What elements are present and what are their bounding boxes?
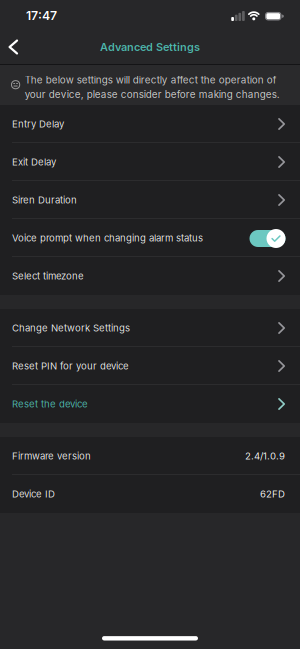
staticText: Exit Delay bbox=[12, 156, 56, 168]
button[interactable]: Reset PIN for your device bbox=[0, 347, 300, 385]
staticText: Reset PIN for your device bbox=[12, 360, 129, 372]
button[interactable]: Select timezone bbox=[0, 257, 300, 295]
button[interactable]: Entry Delay bbox=[0, 105, 300, 143]
staticText: your device, please consider before maki… bbox=[25, 88, 280, 100]
staticText: 17:47 bbox=[26, 8, 57, 23]
button[interactable]: Voice prompt when changing alarm status bbox=[0, 219, 300, 257]
button[interactable]: Back bbox=[0, 39, 18, 55]
staticText: 62FD bbox=[260, 488, 285, 500]
button[interactable]: Siren Duration bbox=[0, 181, 300, 219]
staticText: Voice prompt when changing alarm status bbox=[12, 232, 203, 244]
button[interactable]: Exit Delay bbox=[0, 143, 300, 181]
staticText: Siren Duration bbox=[12, 194, 77, 206]
staticText: Select timezone bbox=[12, 270, 84, 282]
staticText: Advanced Settings bbox=[100, 40, 200, 54]
button[interactable]: Change Network Settings bbox=[0, 309, 300, 347]
staticText: Change Network Settings bbox=[12, 322, 130, 334]
staticText: Firmware version bbox=[12, 450, 91, 462]
staticText: Device ID bbox=[12, 488, 55, 500]
staticText: 2.4/1.0.9 bbox=[245, 450, 285, 462]
staticText: Reset the device bbox=[12, 398, 88, 410]
button[interactable]: Reset the device bbox=[0, 385, 300, 423]
staticText: The below settings will directly affect … bbox=[25, 74, 277, 86]
staticText: Entry Delay bbox=[12, 118, 64, 130]
